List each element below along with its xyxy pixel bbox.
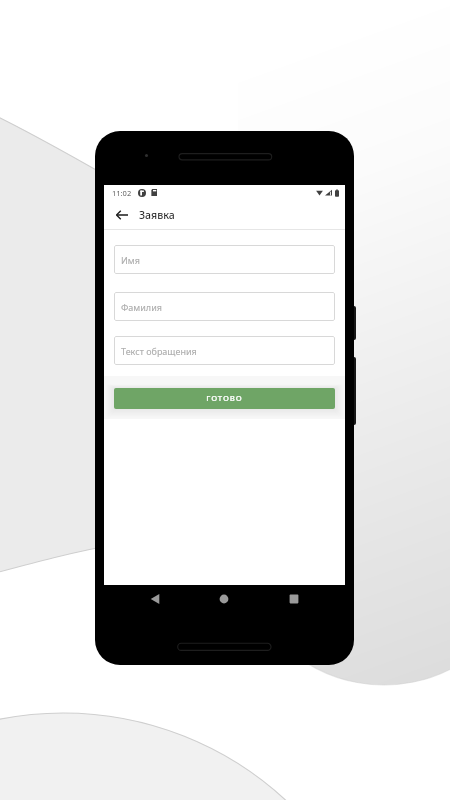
staticText: Заявка [139,208,175,222]
button[interactable]: Home [213,588,235,610]
button[interactable]: Back [144,588,166,610]
staticText: 11:02 [112,188,132,198]
button[interactable]: Back [114,207,130,223]
button[interactable]: Имя [114,245,335,274]
staticText: Имя [121,254,140,266]
button[interactable]: Фамилия [114,292,335,321]
staticText: Фамилия [121,301,162,313]
button[interactable]: Recents [283,588,305,610]
staticText: ГОТОВО [206,393,243,404]
button[interactable]: Текст обращения [114,336,335,365]
button[interactable]: ГОТОВО [114,388,335,409]
staticText: Текст обращения [121,345,197,357]
